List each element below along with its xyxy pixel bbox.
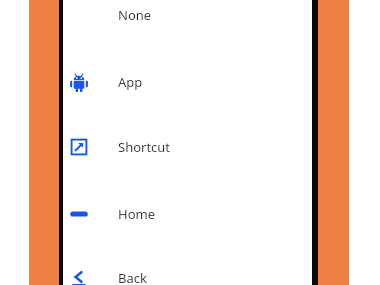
staticText: App [118, 73, 143, 91]
other: Home [63, 202, 95, 226]
button[interactable]: App [63, 70, 312, 94]
button[interactable]: Back [63, 269, 312, 285]
other: App [63, 70, 95, 94]
staticText: None [118, 6, 152, 24]
button[interactable]: Home [63, 202, 312, 226]
staticText: Shortcut [118, 138, 171, 156]
button[interactable]: None [63, 3, 312, 27]
staticText: Home [118, 205, 155, 223]
staticText: Back [118, 269, 147, 285]
other: Shortcut [63, 135, 95, 159]
other: Back [63, 269, 95, 285]
button[interactable]: Shortcut [63, 135, 312, 159]
